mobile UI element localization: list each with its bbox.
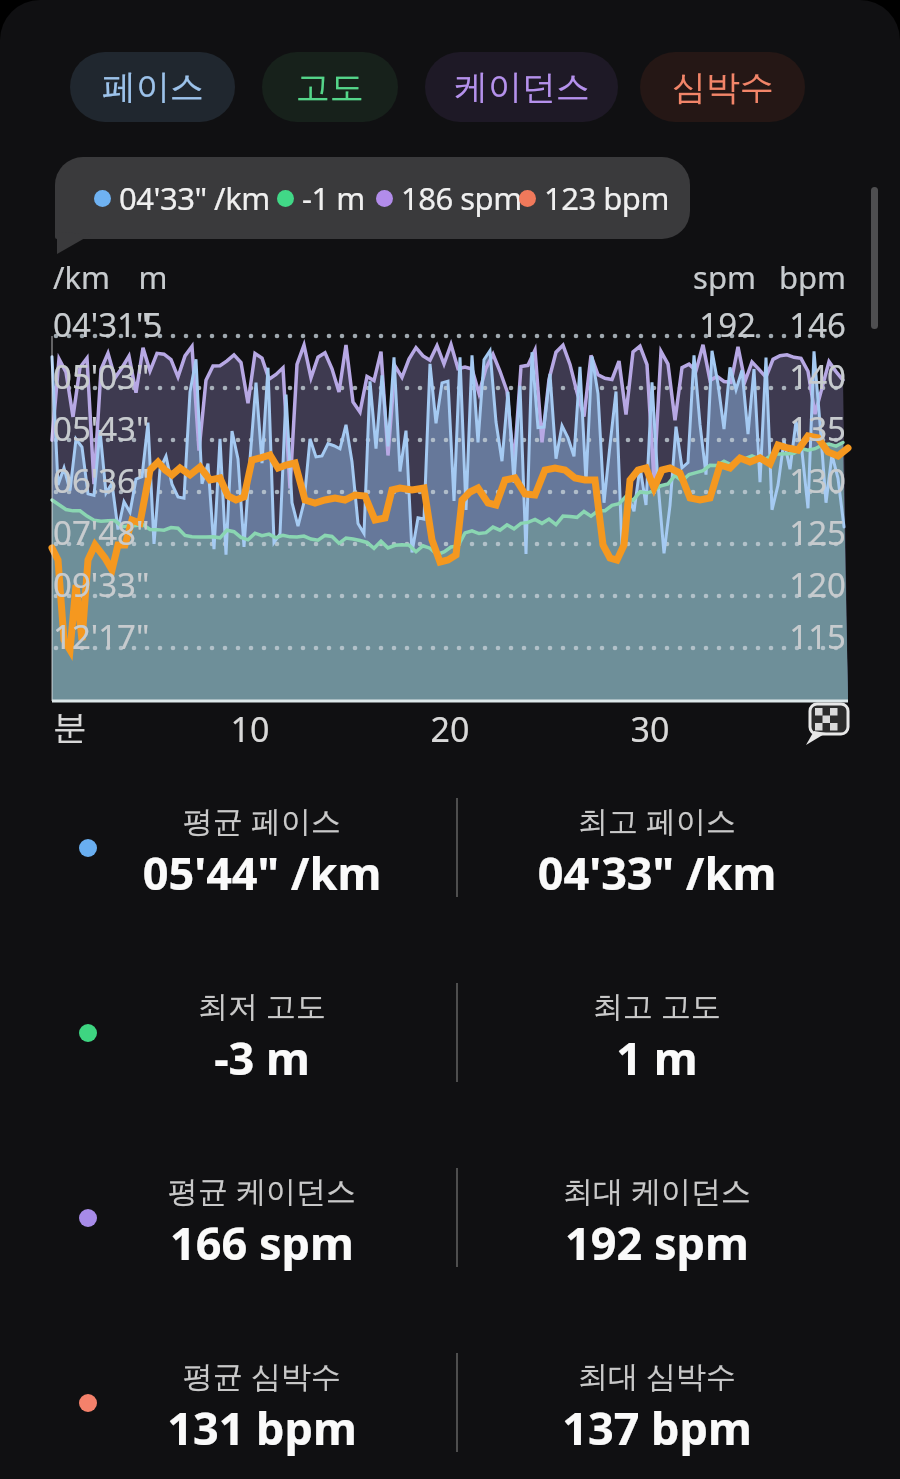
staticText: 분 [40, 706, 100, 749]
staticText: 09'33" [53, 562, 173, 607]
button[interactable]: 평균 심박수 [112, 1355, 412, 1396]
staticText: 최대 케이던스 [507, 1170, 807, 1211]
staticText: 페이스 [102, 66, 204, 109]
staticText: 1 m [507, 1027, 807, 1088]
staticText: 케이던스 [454, 66, 590, 109]
staticText: -3 m [112, 1027, 412, 1088]
staticText: -1 m [302, 177, 365, 219]
staticText: 05'44" /km [112, 842, 412, 903]
staticText: 04'31" [53, 302, 173, 347]
staticText: 5 [123, 302, 183, 347]
staticText: 192 [690, 302, 756, 347]
staticText: 120 [778, 562, 846, 607]
button[interactable]: 최고 고도 [507, 985, 807, 1026]
button[interactable]: 최대 심박수 [507, 1355, 807, 1396]
staticText: 137 bpm [507, 1397, 807, 1458]
button[interactable]: 케이던스 [425, 52, 618, 122]
staticText: 192 spm [507, 1212, 807, 1273]
staticText: 131 bpm [112, 1397, 412, 1458]
staticText: 12'17" [53, 614, 173, 659]
button[interactable]: 심박수 [640, 52, 805, 122]
staticText: 125 [778, 510, 846, 555]
button[interactable]: 평균 페이스 [112, 800, 412, 841]
button[interactable]: 평균 케이던스 [112, 1170, 412, 1211]
staticText: 10 [220, 706, 280, 752]
staticText: 05'43" [53, 406, 173, 451]
staticText: 166 spm [112, 1212, 412, 1273]
staticText: 04'33" /km [507, 842, 807, 903]
staticText: 123 bpm [544, 177, 669, 219]
button[interactable]: 최고 페이스 [507, 800, 807, 841]
staticText: 평균 심박수 [112, 1355, 412, 1396]
staticText: 평균 케이던스 [112, 1170, 412, 1211]
staticText: 146 [778, 302, 846, 347]
button[interactable]: 고도 [262, 52, 398, 122]
staticText: 최고 고도 [507, 985, 807, 1026]
staticText: 186 spm [401, 177, 522, 219]
staticText: 115 [778, 614, 846, 659]
staticText: 최대 심박수 [507, 1355, 807, 1396]
staticText: bpm [778, 256, 846, 298]
staticText: 06'36" [53, 458, 173, 503]
button[interactable]: 최대 케이던스 [507, 1170, 807, 1211]
button[interactable]: 페이스 [70, 52, 235, 122]
staticText: 135 [778, 406, 846, 451]
staticText: m [123, 256, 183, 298]
staticText: 130 [778, 458, 846, 503]
staticText: spm [690, 256, 756, 298]
staticText: 20 [420, 706, 480, 752]
button[interactable]: 최저 고도 [112, 985, 412, 1026]
staticText: 심박수 [672, 66, 774, 109]
staticText: 04'33" /km [119, 177, 270, 219]
staticText: 평균 페이스 [112, 800, 412, 841]
staticText: 05'03" [53, 354, 173, 399]
staticText: 07'48" [53, 510, 173, 555]
staticText: 140 [778, 354, 846, 399]
staticText: 고도 [296, 66, 364, 109]
staticText: /km [53, 256, 133, 298]
button[interactable]: 04'33" /km [55, 157, 690, 239]
staticText: 최저 고도 [112, 985, 412, 1026]
staticText: 30 [620, 706, 680, 752]
staticText: 최고 페이스 [507, 800, 807, 841]
